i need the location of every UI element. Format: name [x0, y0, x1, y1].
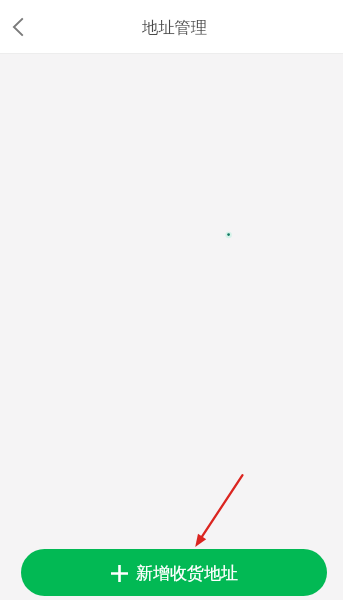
button[interactable]: Back [0, 5, 39, 49]
staticText: 新增收货地址 [136, 563, 238, 584]
staticText: 地址管理 [142, 17, 207, 37]
button[interactable]: 新增收货地址 [21, 549, 327, 596]
